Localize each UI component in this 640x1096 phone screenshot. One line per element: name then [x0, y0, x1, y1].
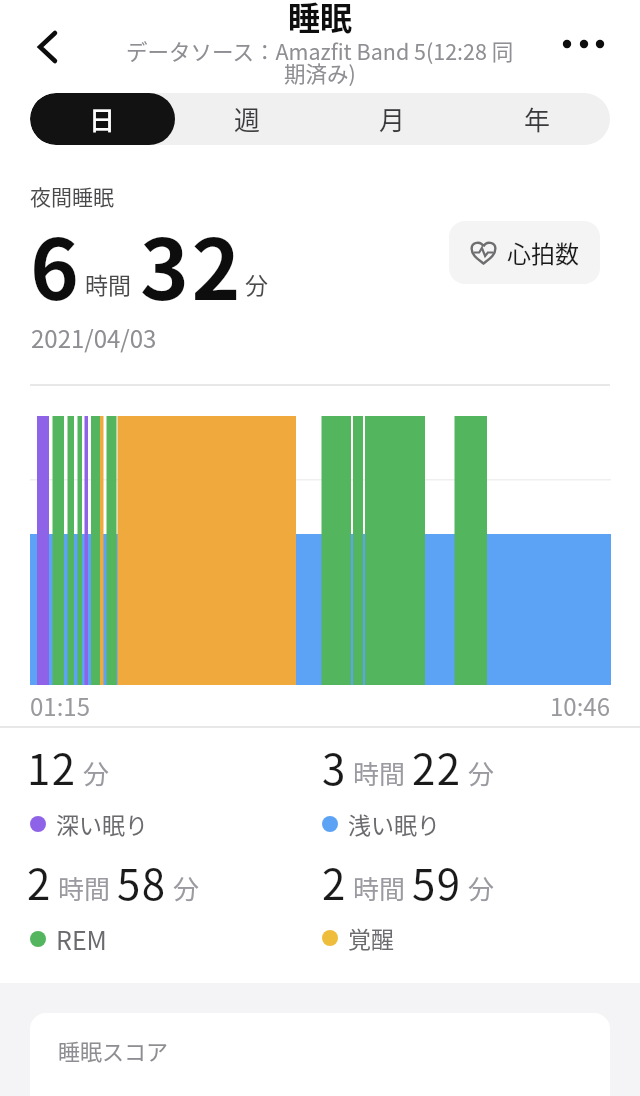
button[interactable]: 日 [30, 93, 175, 145]
staticText: 深い眠り [56, 807, 148, 840]
button[interactable] [552, 28, 616, 60]
staticText: 浅い眠り [348, 807, 440, 840]
button[interactable]: 心拍数 [449, 221, 600, 284]
staticText: REM [56, 921, 107, 957]
staticText: 年 [524, 100, 551, 138]
button[interactable]: 睡眠スコア [30, 1013, 610, 1096]
staticText: 2021/04/03 [31, 320, 157, 355]
staticText: 6 [30, 204, 79, 324]
staticText: 分 [468, 754, 495, 792]
button[interactable]: 週 [175, 93, 320, 145]
staticText: 夜間睡眠 [30, 181, 114, 211]
staticText: 分 [83, 754, 110, 792]
staticText: 期済み) [284, 57, 356, 88]
staticText: 10:46 [550, 688, 610, 723]
staticText: 時間 [353, 754, 406, 792]
staticText: 分 [245, 267, 268, 300]
staticText: 時間 [58, 869, 111, 907]
staticText: 日 [89, 100, 116, 138]
staticText: 時間 [353, 869, 406, 907]
staticText: 32 [140, 204, 243, 324]
staticText: 分 [468, 869, 495, 907]
staticText: 2 [322, 851, 347, 912]
staticText: 時間 [85, 267, 131, 300]
button[interactable]: 月 [320, 93, 465, 145]
staticText: 月 [379, 100, 406, 138]
staticText: 59 [412, 851, 462, 912]
staticText: 58 [117, 851, 167, 912]
staticText: 睡眠 [288, 0, 353, 39]
staticText: 心拍数 [507, 235, 579, 270]
staticText: 週 [234, 100, 261, 138]
staticText: 12 [27, 736, 77, 797]
staticText: 覚醒 [348, 921, 394, 954]
staticText: 分 [173, 869, 200, 907]
staticText: 3 [322, 736, 347, 797]
button[interactable]: 年 [465, 93, 610, 145]
staticText: 01:15 [30, 688, 90, 723]
staticText: 睡眠スコア [58, 1034, 169, 1066]
staticText: 2 [27, 851, 52, 912]
staticText: 22 [412, 736, 462, 797]
button[interactable] [30, 26, 66, 66]
staticText: データソース：Amazfit Band 5(12:28 同 [126, 35, 514, 66]
